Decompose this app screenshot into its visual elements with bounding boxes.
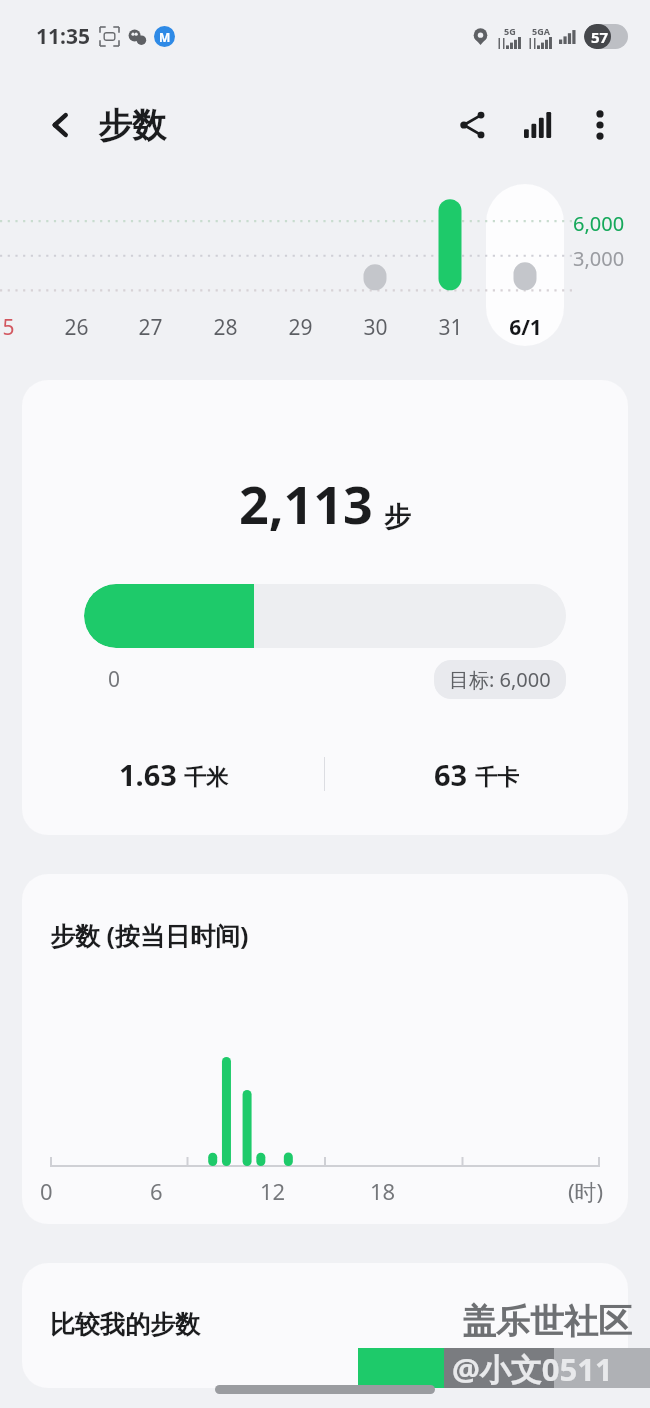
staticText: 目标: 6,000 [449,666,551,693]
staticText: M [159,29,171,45]
staticText: 5GA [532,25,550,37]
staticText: 29 [288,313,313,342]
staticText: 2,113 [239,468,373,539]
staticText: 千卡 [475,764,519,792]
staticText: 盖乐世社区 [462,1300,632,1343]
staticText: 0 [40,1176,53,1206]
staticText: 比较我的步数 [50,1309,200,1340]
button[interactable]: 比较我的步数 [22,1263,628,1388]
staticText: 6/1 [509,313,542,342]
staticText: 5 [2,313,15,342]
staticText: 63 [434,755,468,794]
staticText: @小文0511 [452,1348,613,1390]
button[interactable]: 2,113 [22,380,628,835]
staticText: 6,000 [573,210,625,237]
staticText: 千米 [184,764,228,792]
staticText: 12 [260,1176,286,1206]
staticText: 11:35 [36,22,90,51]
staticText: 28 [213,313,238,342]
staticText: 57 [591,27,609,47]
button[interactable]: Chart [512,99,564,151]
staticText: 6 [150,1176,163,1206]
staticText: 5G [504,25,516,37]
staticText: 27 [138,313,163,342]
staticText: 26 [64,313,89,342]
staticText: 步 [384,500,411,534]
staticText: 步数 (按当日时间) [50,918,249,952]
staticText: 步数 [98,104,166,147]
button[interactable]: 步数 (按当日时间) [22,874,628,1224]
button[interactable]: More options [574,99,626,151]
staticText: 30 [363,313,388,342]
button[interactable] [486,184,564,346]
staticText: 31 [438,313,463,342]
staticText: 3,000 [573,245,625,272]
staticText: (时) [568,1176,604,1206]
staticText: 1.63 [119,755,177,794]
staticText: 18 [370,1176,396,1206]
button[interactable]: Share [446,99,498,151]
staticText: 0 [108,665,121,694]
button[interactable]: Back [38,102,84,148]
